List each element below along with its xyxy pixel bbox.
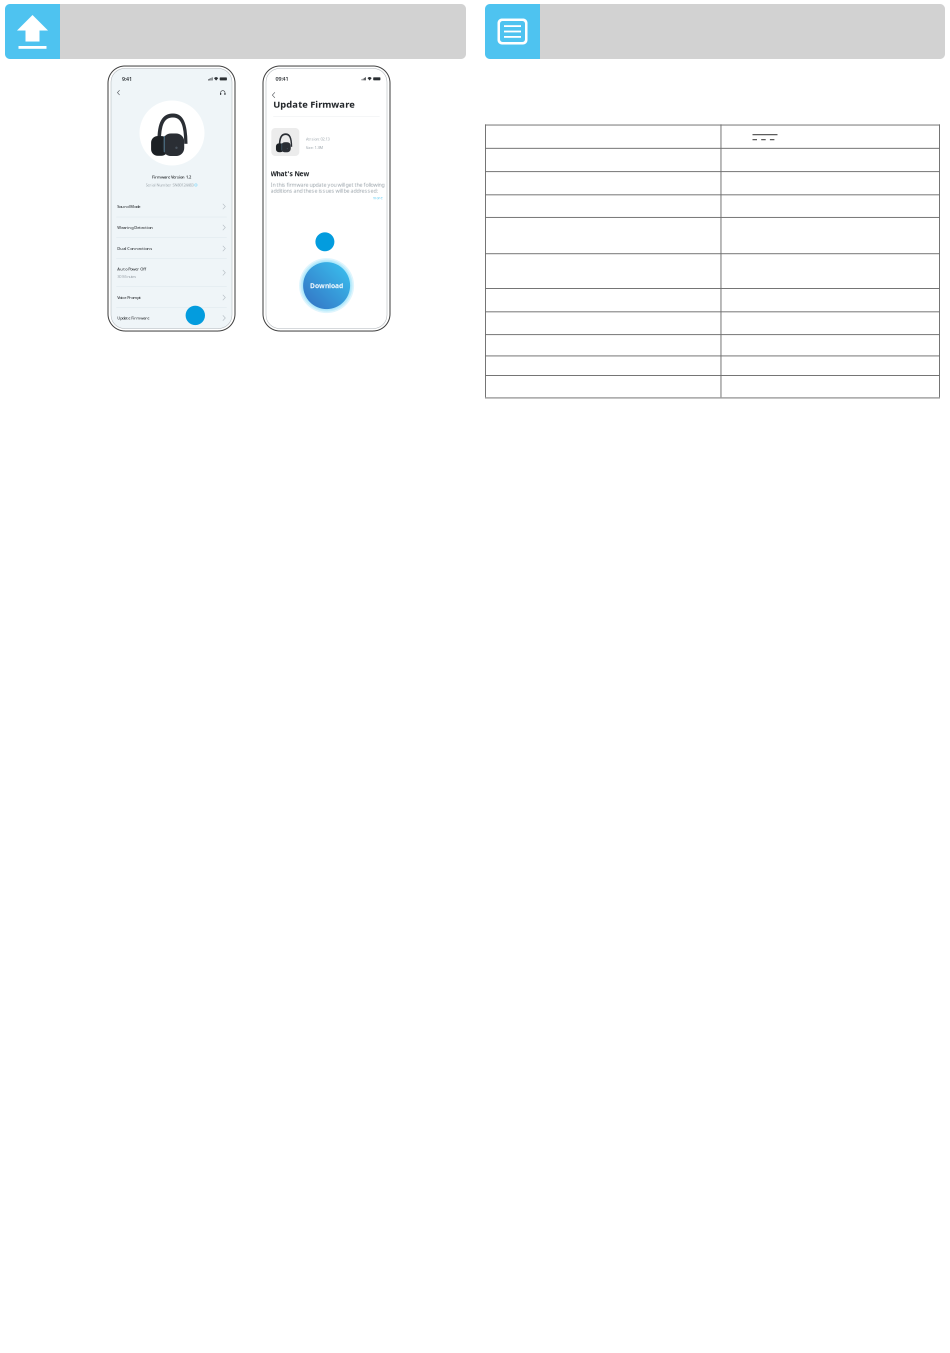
staticText: 30 Minutes bbox=[117, 274, 136, 279]
staticText: additions and these issues will be addre… bbox=[271, 187, 378, 194]
button[interactable]: Dual Connections bbox=[111, 238, 232, 259]
button[interactable]: Document bbox=[485, 4, 945, 59]
staticText: Serial Number SN80124483 bbox=[145, 182, 193, 188]
staticText: Sound Mode bbox=[117, 204, 140, 209]
button[interactable]: Back bbox=[268, 90, 279, 101]
button[interactable]: Wearing Detection bbox=[111, 217, 232, 238]
button[interactable]: Download bbox=[303, 262, 350, 309]
button[interactable]: Voice Prompt bbox=[111, 287, 232, 308]
staticText: In this firmware update you will get the… bbox=[271, 181, 385, 188]
staticText: Size: 1.3M bbox=[305, 145, 323, 150]
staticText: Firmware Version 1.2 bbox=[152, 174, 191, 180]
staticText: 09:41 bbox=[275, 75, 288, 82]
staticText: Update Firmware bbox=[117, 315, 149, 321]
button[interactable]: Headphones bbox=[217, 87, 228, 98]
staticText: Auto Power Off bbox=[117, 266, 146, 272]
staticText: Version: 02.13 bbox=[305, 136, 329, 141]
staticText: more bbox=[373, 195, 383, 200]
button[interactable]: Back bbox=[113, 87, 124, 98]
staticText: Dual Connections bbox=[117, 246, 152, 251]
staticText: Voice Prompt bbox=[117, 295, 141, 300]
staticText: Download bbox=[310, 281, 343, 290]
staticText: What's New bbox=[271, 169, 310, 178]
staticText: Update Firmware bbox=[273, 98, 355, 110]
button[interactable]: Upload bbox=[5, 4, 466, 59]
button[interactable]: Update Firmware bbox=[111, 308, 232, 328]
staticText: 9:41 bbox=[122, 75, 132, 82]
button[interactable]: Sound Mode bbox=[111, 196, 232, 217]
button[interactable]: more bbox=[271, 195, 383, 200]
button[interactable]: Auto Power Off bbox=[111, 259, 232, 286]
staticText: Wearing Detection bbox=[117, 225, 153, 230]
